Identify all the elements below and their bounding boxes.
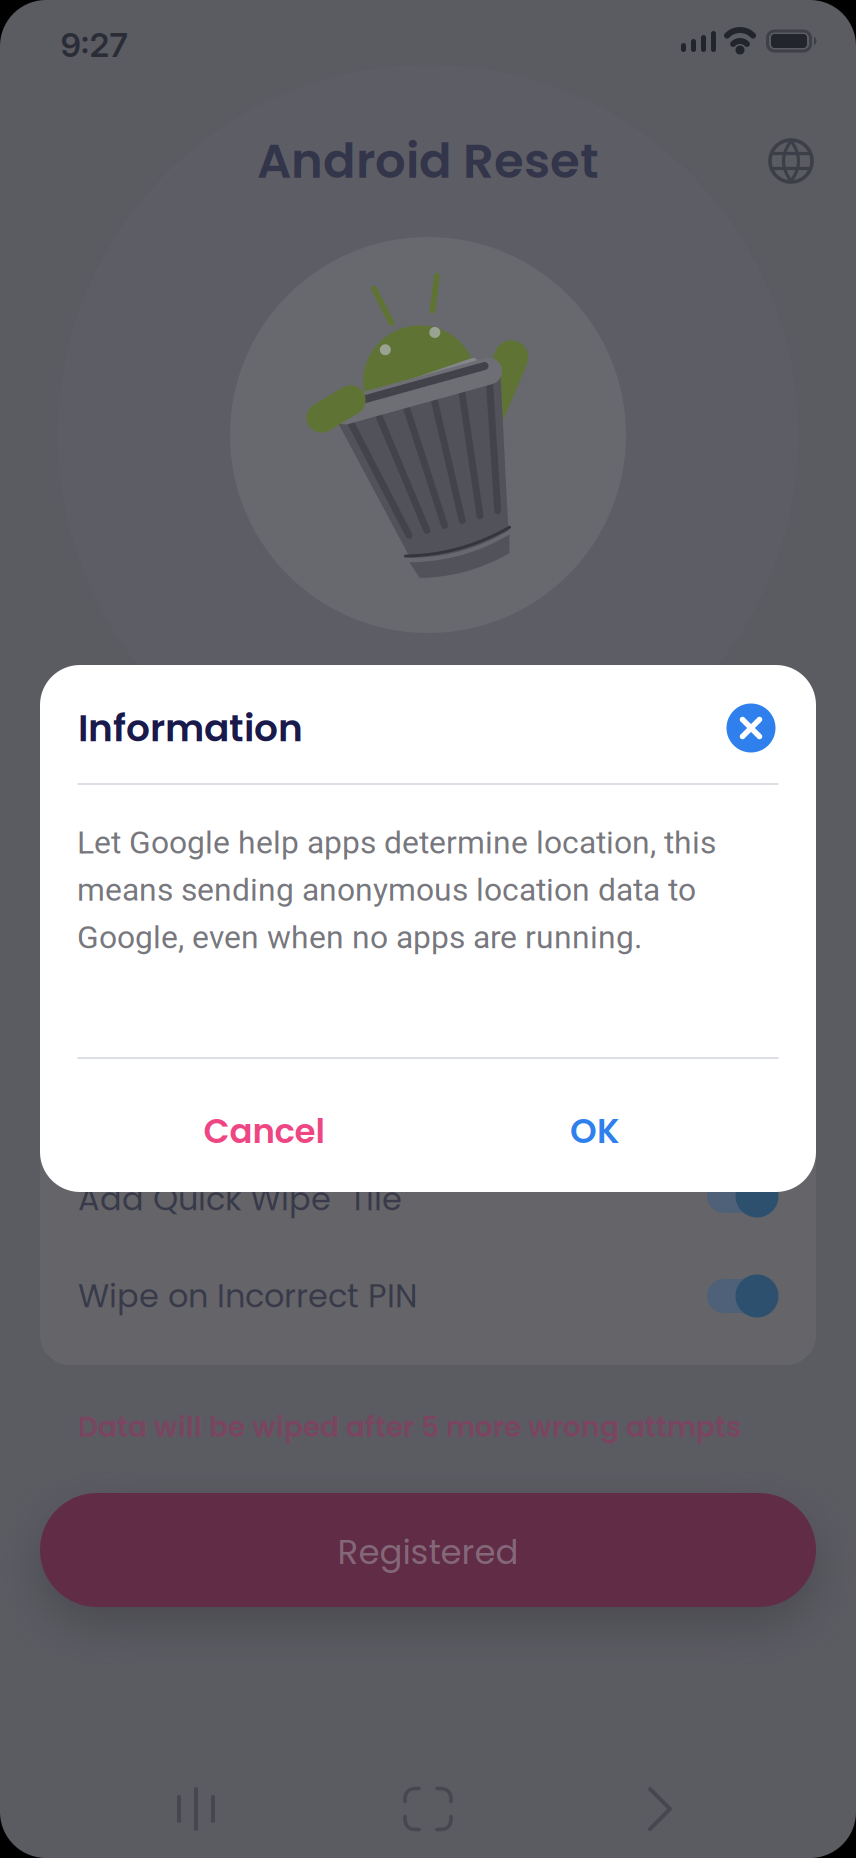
button[interactable]: Back [650, 1789, 670, 1829]
button[interactable]: Add Quick Wipe Tile [705, 1174, 779, 1218]
staticText: Android Reset [257, 127, 599, 195]
button[interactable]: Language [767, 137, 815, 185]
staticText: Cancel [203, 1107, 324, 1155]
staticText: Add Quick Wipe Tile [78, 1177, 402, 1221]
button[interactable]: Cancel [164, 1099, 364, 1163]
staticText: OK [570, 1107, 620, 1155]
button[interactable]: Recent apps [161, 1771, 231, 1847]
button[interactable]: Registered [40, 1493, 816, 1607]
staticText: means sending anonymous location data to [77, 871, 696, 909]
button[interactable]: Wipe on Incorrect PIN [705, 1274, 779, 1318]
button[interactable]: Close [726, 703, 775, 752]
staticText: Data will be wiped after 5 more wrong at… [78, 1407, 741, 1447]
staticText: Registered [337, 1528, 518, 1576]
staticText: 9:27 [60, 25, 127, 65]
button[interactable]: Home [389, 1772, 467, 1845]
staticText: Wipe on Incorrect PIN [78, 1274, 417, 1318]
button[interactable]: OK [525, 1099, 665, 1163]
staticText: Information [78, 702, 303, 754]
staticText: Let Google help apps determine location,… [77, 824, 716, 861]
staticText: Google, even when no apps are running. [77, 919, 642, 956]
